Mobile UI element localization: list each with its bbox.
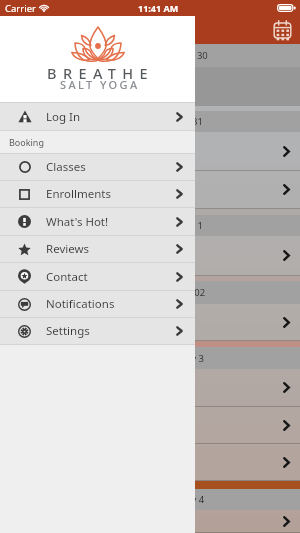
button[interactable]: Notifications (0, 291, 195, 317)
button[interactable]: Settings (0, 318, 195, 344)
button[interactable] (0, 444, 300, 480)
staticText: Tuesday, December 30 (107, 49, 208, 62)
staticText: Settings (46, 323, 90, 339)
staticText: Booking (9, 136, 44, 148)
button[interactable] (0, 132, 300, 170)
staticText: Carrier (5, 2, 36, 15)
button[interactable] (0, 510, 300, 532)
staticText: Enrollments (46, 186, 111, 202)
button[interactable]: Enrollments (0, 181, 195, 207)
staticText: Thursday, January 1 (115, 219, 203, 232)
button[interactable]: Log In (0, 103, 195, 130)
button[interactable]: Calendar (271, 18, 293, 40)
staticText: BREATHE (47, 63, 155, 83)
staticText: Wednesday, December 31 (87, 115, 203, 128)
button[interactable]: What's Hot! (0, 208, 195, 235)
button[interactable] (0, 171, 300, 208)
staticText: Sunday, January 4 (125, 493, 205, 506)
staticText: What's Hot! (46, 214, 109, 230)
staticText: Friday, January 02 (126, 286, 206, 299)
button[interactable] (0, 236, 300, 275)
button[interactable] (0, 407, 300, 443)
staticText: SALT YOGA (60, 77, 140, 92)
staticText: Reviews (46, 241, 90, 257)
staticText: Notifications (46, 296, 115, 312)
button[interactable]: Contact (0, 263, 195, 290)
staticText: Saturday, January 3 (118, 352, 204, 365)
button[interactable]: Reviews (0, 236, 195, 262)
staticText: Classes (46, 159, 86, 175)
button[interactable] (0, 304, 300, 340)
button[interactable] (0, 369, 300, 406)
button[interactable]: Classes (0, 154, 195, 180)
staticText: Log In (46, 109, 81, 125)
staticText: 11:41 AM (138, 2, 179, 14)
staticText: Contact (46, 269, 88, 285)
